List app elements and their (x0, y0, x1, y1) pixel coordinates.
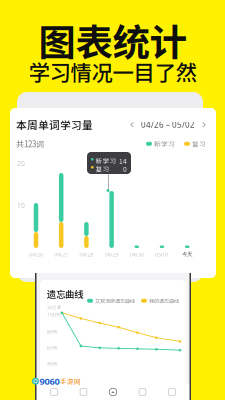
button[interactable]: Word list (46, 385, 62, 398)
staticText: 04/27 (54, 251, 68, 258)
staticText: 04/30 (130, 251, 144, 258)
staticText: 100% (47, 311, 60, 318)
staticText: 复习 (95, 164, 109, 174)
staticText: 04/26 (29, 251, 43, 258)
staticText: 04/28 (79, 251, 93, 258)
button[interactable]: Notebook (134, 385, 150, 398)
staticText: 新学习 (95, 156, 116, 166)
staticText: 60% (47, 344, 57, 351)
staticText: 9060 (39, 375, 59, 387)
staticText: 新学习 (154, 139, 175, 149)
staticText: 40% (47, 360, 57, 367)
button[interactable]: Review (75, 385, 91, 398)
staticText: 学习情况一目了然 (28, 56, 196, 87)
staticText: 04/29 (105, 251, 119, 258)
staticText: 手游网 (60, 376, 81, 386)
button[interactable]: Add (105, 385, 121, 398)
staticText: 共123词 (16, 138, 44, 150)
staticText: 80% (47, 328, 57, 335)
staticText: 05/01 (155, 251, 169, 258)
staticText: 复习 (192, 139, 206, 149)
staticText: 遗忘曲线 (47, 287, 83, 300)
staticText: 20 (17, 159, 25, 168)
staticText: 0 (123, 164, 127, 174)
staticText: 今天 (182, 251, 192, 258)
staticText: 艾宾浩斯遗忘曲线 (95, 297, 135, 304)
staticText: 本周单词学习量 (16, 117, 93, 132)
staticText: 10 (17, 201, 25, 210)
staticText: 记忆率 (47, 304, 62, 311)
button[interactable]: Profile (164, 385, 180, 398)
staticText: 04/26 – 05/02 (141, 119, 195, 130)
staticText: 14 (119, 156, 127, 166)
staticText: 图表统计 (38, 13, 186, 67)
button[interactable]: 04/26 – 05/02 (130, 119, 206, 130)
staticText: 我的遗忘曲线 (149, 297, 179, 304)
